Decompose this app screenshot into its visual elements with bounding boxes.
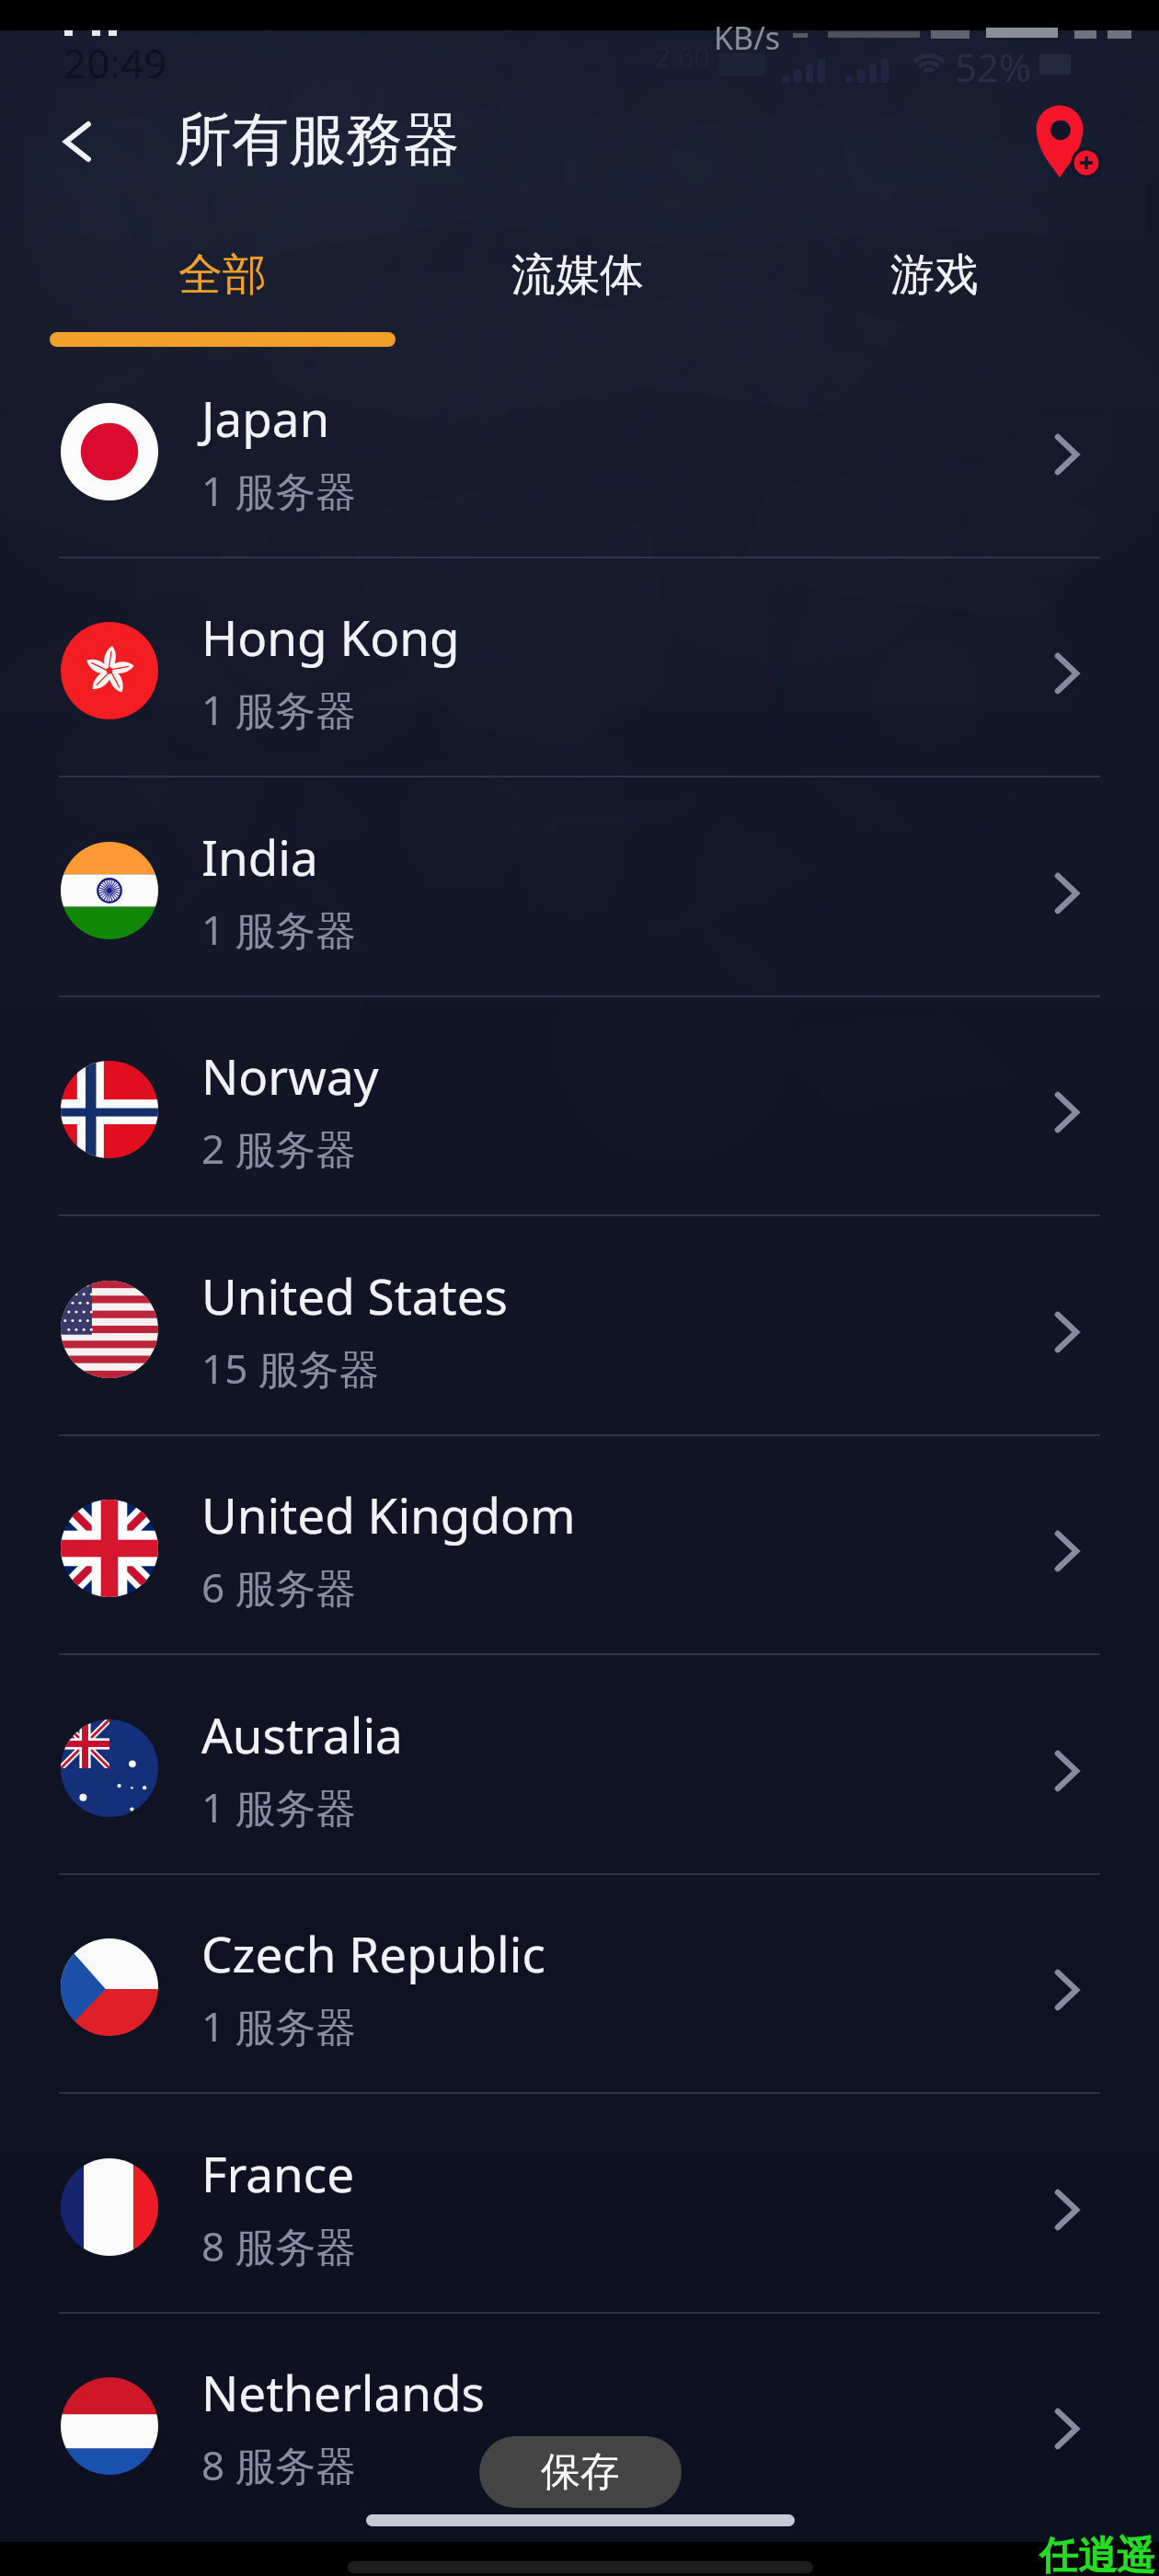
staticText: Japan: [201, 385, 330, 451]
staticText: 8 服务器: [201, 2437, 357, 2492]
staticText: 6 服务器: [201, 1559, 357, 1615]
staticText: 全部: [178, 247, 267, 303]
staticText: 20:49: [63, 35, 167, 90]
staticText: 流媒体: [511, 247, 644, 303]
staticText: 1 服务器: [201, 463, 357, 518]
staticText: 15 服务器: [201, 1340, 380, 1396]
button[interactable]: 游戏: [760, 202, 1109, 331]
staticText: Netherlands: [201, 2359, 485, 2425]
staticText: Australia: [201, 1701, 403, 1767]
staticText: 1 服务器: [201, 902, 357, 957]
button[interactable]: Netherlands: [0, 2313, 1159, 2533]
staticText: 1 服务器: [201, 1779, 357, 1834]
button[interactable]: Back: [33, 98, 121, 186]
button[interactable]: Add location: [1016, 97, 1107, 189]
staticText: 保存: [541, 2447, 620, 2497]
staticText: Hong Kong: [201, 604, 460, 670]
staticText: Norway: [201, 1042, 379, 1109]
staticText: United Kingdom: [201, 1481, 576, 1547]
button[interactable]: France: [0, 2094, 1159, 2314]
staticText: 2 服务器: [201, 1121, 357, 1176]
staticText: 所有服務器: [175, 104, 460, 176]
staticText: 游戏: [890, 247, 979, 303]
button[interactable]: United States: [0, 1216, 1159, 1436]
staticText: 52%: [955, 40, 1031, 93]
staticText: 8 服务器: [201, 2218, 357, 2273]
button[interactable]: Hong Kong: [0, 558, 1159, 777]
staticText: United States: [201, 1262, 508, 1328]
button[interactable]: 全部: [48, 202, 397, 331]
staticText: Czech Republic: [201, 1920, 545, 1986]
staticText: France: [201, 2140, 355, 2206]
button[interactable]: Czech Republic: [0, 1874, 1159, 2094]
staticText: 1 服务器: [201, 682, 357, 737]
button[interactable]: United Kingdom: [0, 1435, 1159, 1655]
button[interactable]: Australia: [0, 1655, 1159, 1875]
button[interactable]: Japan: [0, 339, 1159, 558]
button[interactable]: 保存: [479, 2436, 682, 2508]
staticText: KB/s: [714, 17, 781, 59]
button[interactable]: India: [0, 777, 1159, 997]
button[interactable]: Norway: [0, 996, 1159, 1216]
staticText: 任逍遥: [1039, 2532, 1155, 2576]
staticText: India: [201, 823, 318, 890]
button[interactable]: 流媒体: [403, 202, 752, 331]
staticText: 1 服务器: [201, 1998, 357, 2053]
